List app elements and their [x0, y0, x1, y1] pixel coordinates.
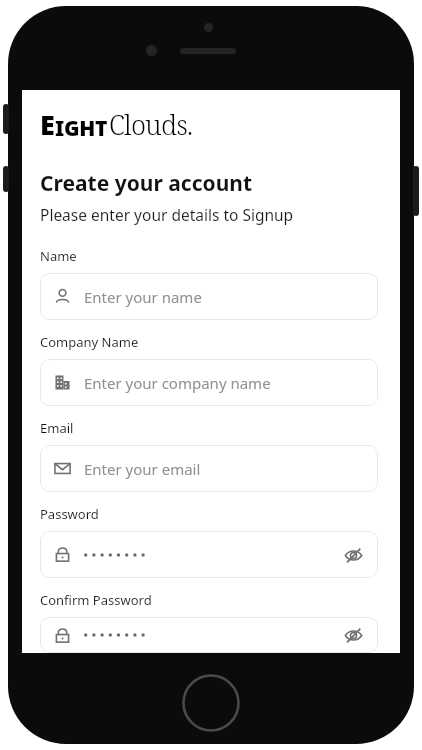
button[interactable]: Enter your name — [40, 273, 378, 320]
staticText: Enter your company name — [84, 373, 365, 393]
staticText: E — [40, 106, 55, 143]
staticText: IGHT — [55, 114, 108, 143]
button[interactable]: Enter your company name — [40, 359, 378, 406]
button[interactable]: Show password — [341, 623, 365, 647]
staticText: Confirm Password — [40, 591, 152, 609]
staticText: Enter your name — [84, 287, 365, 307]
button[interactable]: Enter your email — [40, 445, 378, 492]
staticText: Email — [40, 419, 74, 437]
staticText: Enter your email — [84, 459, 365, 479]
button[interactable]: Show password — [341, 543, 365, 567]
staticText: Clouds. — [109, 106, 193, 143]
staticText: Name — [40, 247, 77, 265]
button[interactable]: Show password — [40, 617, 378, 653]
staticText: Company Name — [40, 333, 139, 351]
staticText: Please enter your details to Signup — [40, 204, 294, 225]
button[interactable]: Show password — [40, 531, 378, 578]
staticText: Create your account — [40, 169, 253, 198]
staticText: Password — [40, 505, 99, 523]
